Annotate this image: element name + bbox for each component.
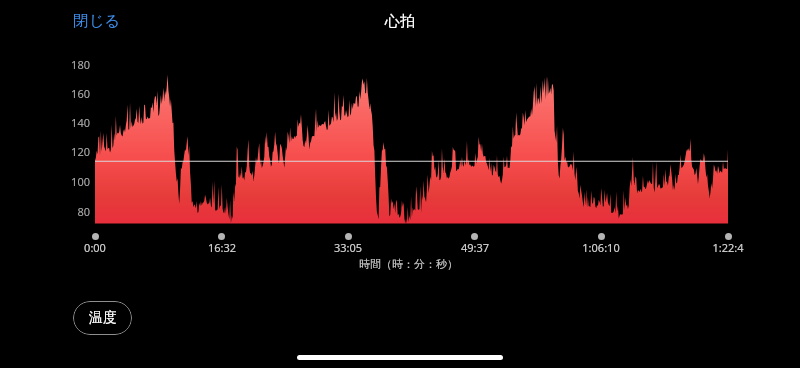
staticText: 180 bbox=[58, 57, 90, 72]
staticText: 120 bbox=[58, 144, 90, 159]
staticText: 160 bbox=[58, 86, 90, 101]
staticText: 80 bbox=[58, 204, 90, 219]
staticText: 1:22:4 bbox=[688, 240, 768, 255]
staticText: 33:05 bbox=[308, 240, 388, 255]
button[interactable]: 閉じる bbox=[73, 11, 121, 31]
staticText: 時間（時：分：秒） bbox=[359, 257, 458, 271]
staticText: 温度 bbox=[89, 309, 117, 327]
staticText: 心拍 bbox=[385, 12, 415, 31]
button[interactable]: 温度 bbox=[73, 301, 132, 335]
other: Home indicator bbox=[297, 355, 503, 360]
staticText: 0:00 bbox=[55, 240, 135, 255]
staticText: 閉じる bbox=[73, 11, 121, 31]
staticText: 100 bbox=[58, 174, 90, 189]
staticText: 16:32 bbox=[182, 240, 262, 255]
staticText: 49:37 bbox=[435, 240, 515, 255]
staticText: 1:06:10 bbox=[561, 240, 641, 255]
staticText: 140 bbox=[58, 115, 90, 130]
